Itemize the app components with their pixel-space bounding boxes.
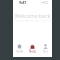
staticText: Shop [29,50,36,53]
staticText: You [43,50,48,53]
staticText: 9:41 [19,0,26,5]
staticText: Home [15,50,23,53]
button[interactable]: Shop [26,43,39,54]
staticText: Pick up where you left off [14,19,51,22]
button[interactable]: Home [13,43,26,54]
button[interactable]: You [39,43,52,54]
staticText: Welcome back [14,12,50,20]
